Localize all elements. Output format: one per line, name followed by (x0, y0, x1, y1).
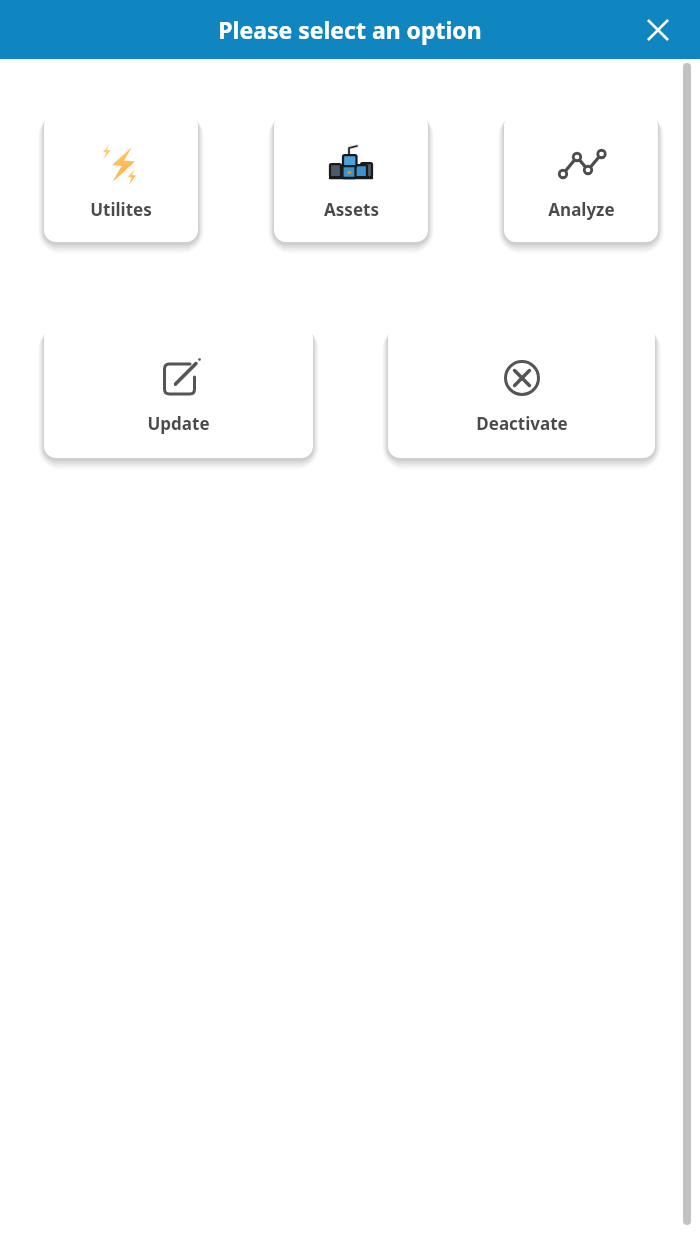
staticText: Utilites (90, 198, 152, 221)
staticText: Please select an option (218, 14, 482, 45)
button[interactable]: Analyze (504, 114, 658, 242)
button[interactable]: Update (44, 327, 313, 458)
button[interactable]: Utilites (44, 114, 198, 242)
staticText: Update (147, 412, 210, 435)
button[interactable]: Assets (274, 114, 428, 242)
staticText: Assets (324, 198, 379, 221)
staticText: Analyze (548, 198, 615, 221)
staticText: Deactivate (476, 412, 568, 435)
button[interactable]: Deactivate (388, 327, 655, 458)
button[interactable]: Close (636, 8, 680, 52)
